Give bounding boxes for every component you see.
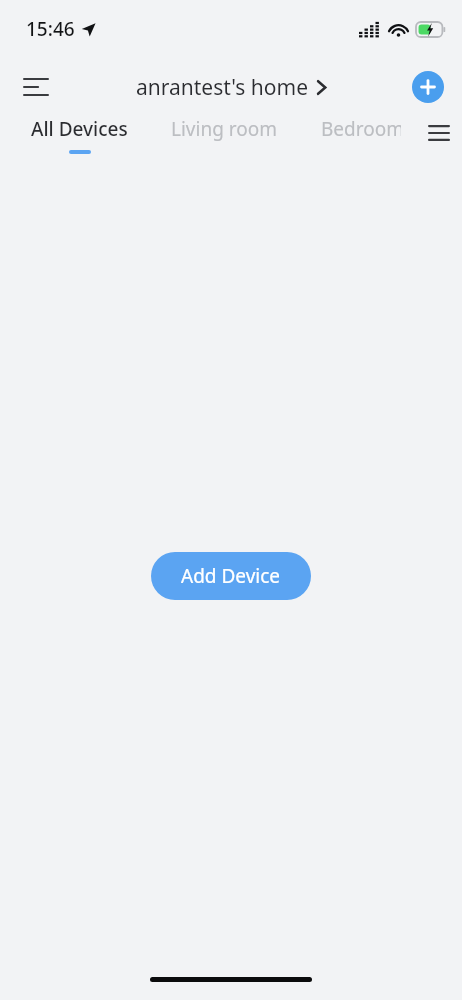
button[interactable]: Living room — [156, 116, 293, 142]
staticText: Living room — [171, 116, 278, 142]
staticText: anrantest's home — [136, 73, 309, 102]
staticText: 15:46 — [26, 16, 75, 42]
button[interactable]: Add Device — [151, 552, 311, 600]
button[interactable]: anrantest's home — [128, 67, 334, 108]
button[interactable]: Bedroom — [306, 116, 416, 142]
staticText: Bedroom — [321, 116, 401, 142]
button[interactable]: All Devices — [16, 116, 143, 154]
staticText: Add Device — [181, 563, 281, 589]
button[interactable]: Menu — [12, 63, 60, 111]
button[interactable]: Room list — [416, 116, 462, 150]
button[interactable]: Add — [406, 65, 450, 109]
staticText: All Devices — [31, 116, 128, 142]
